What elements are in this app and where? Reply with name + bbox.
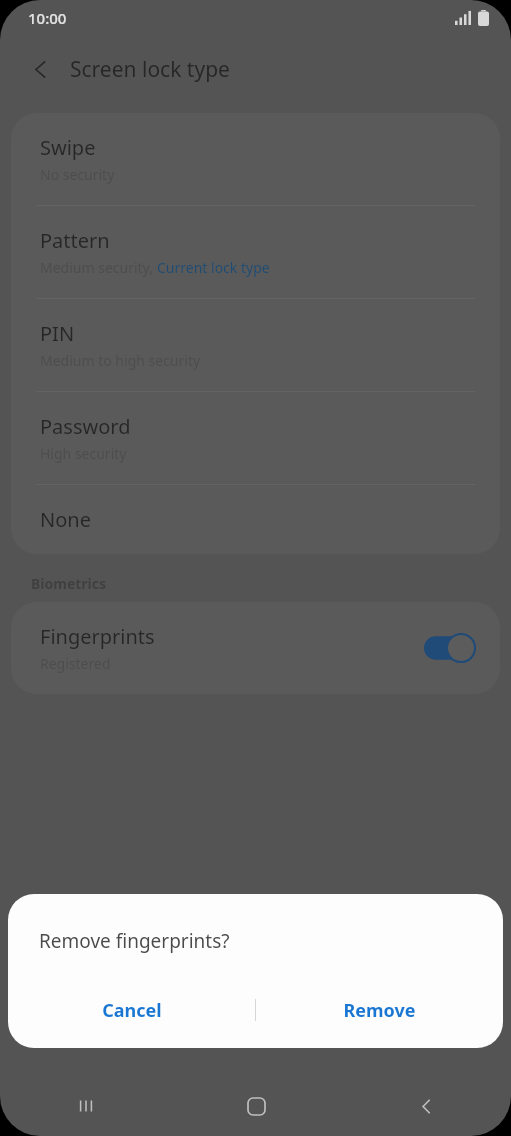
- staticText: Registered: [40, 654, 111, 673]
- staticText: Remove: [343, 998, 416, 1023]
- staticText: Medium to high security: [40, 351, 201, 370]
- button[interactable]: Fingerprints toggle, on: [424, 633, 476, 663]
- staticText: Cancel: [102, 998, 162, 1023]
- button[interactable]: Swipe: [11, 113, 500, 205]
- staticText: Screen lock type: [70, 55, 230, 84]
- button[interactable]: None: [11, 485, 500, 554]
- button[interactable]: Recent apps: [0, 1076, 171, 1136]
- staticText: Fingerprints: [40, 623, 155, 650]
- button[interactable]: Password: [11, 392, 500, 484]
- staticText: None: [40, 506, 91, 533]
- staticText: Current lock type: [157, 258, 270, 277]
- button[interactable]: Home: [171, 1076, 341, 1136]
- button[interactable]: Pattern: [11, 206, 500, 298]
- staticText: Pattern: [40, 227, 110, 254]
- staticText: Remove fingerprints?: [39, 928, 230, 954]
- staticText: Password: [40, 413, 131, 440]
- button[interactable]: Fingerprints: [11, 602, 500, 694]
- staticText: Medium security,: [40, 258, 157, 277]
- staticText: No security: [40, 165, 115, 184]
- staticText: Swipe: [40, 134, 96, 161]
- button[interactable]: Cancel: [8, 982, 255, 1038]
- staticText: High security: [40, 444, 127, 463]
- staticText: 10:00: [28, 8, 67, 28]
- button[interactable]: Remove: [256, 982, 503, 1038]
- button[interactable]: Back: [16, 45, 64, 93]
- button[interactable]: Back: [341, 1076, 511, 1136]
- staticText: PIN: [40, 320, 75, 347]
- staticText: Biometrics: [31, 574, 107, 593]
